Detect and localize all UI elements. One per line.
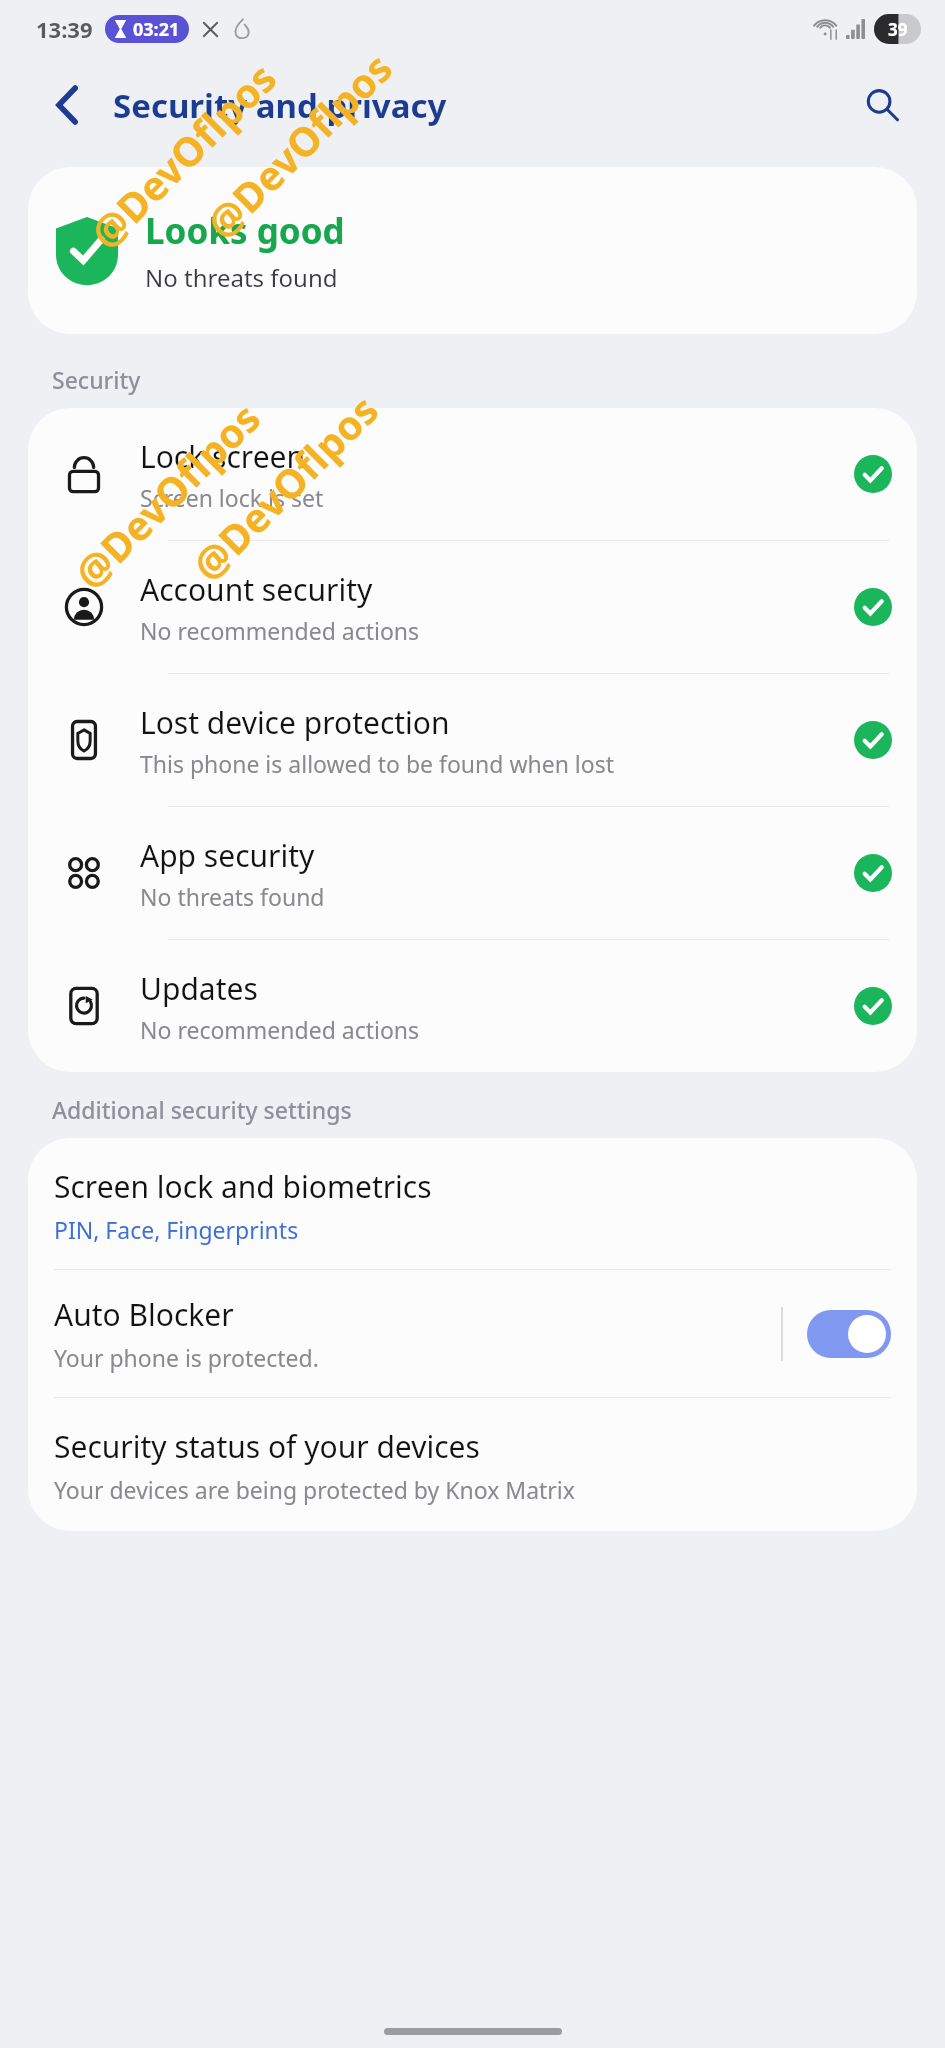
staticText: @DevOflpos <box>194 41 403 249</box>
staticText: Lock screen <box>140 436 306 477</box>
staticText: @DevOflpos <box>180 383 389 591</box>
staticText: Looks good <box>145 207 345 255</box>
staticText: App security <box>140 835 315 876</box>
staticText: No threats found <box>140 881 325 912</box>
staticText: PIN, Face, Fingerprints <box>54 1214 299 1245</box>
staticText: Screen lock is set <box>140 482 324 513</box>
button[interactable]: Lost device protection <box>28 674 917 806</box>
button[interactable]: Lock screen <box>28 408 917 540</box>
staticText: Updates <box>140 968 258 1009</box>
staticText: @DevOflpos <box>62 391 271 599</box>
staticText: Screen lock and biometrics <box>54 1166 432 1207</box>
staticText: Auto Blocker <box>54 1294 234 1335</box>
button[interactable]: Search <box>853 76 911 134</box>
button[interactable]: Updates <box>28 940 917 1072</box>
staticText: Your phone is protected. <box>54 1342 319 1373</box>
button[interactable]: Auto Blocker toggle <box>807 1310 891 1358</box>
staticText: 03:21 <box>133 17 180 42</box>
staticText: Security status of your devices <box>54 1426 480 1467</box>
button[interactable]: Back <box>40 77 96 133</box>
staticText: Security and privacy <box>113 83 447 128</box>
staticText: Account security <box>140 569 373 610</box>
staticText: Lost device protection <box>140 702 450 743</box>
staticText: No threats found <box>145 261 338 294</box>
button[interactable]: Account security <box>28 541 917 673</box>
staticText: Additional security settings <box>52 1094 352 1125</box>
button[interactable]: Screen lock and biometrics <box>28 1138 917 1269</box>
staticText: No recommended actions <box>140 615 420 646</box>
staticText: 39 <box>888 18 908 41</box>
button[interactable]: Looks good <box>28 167 917 334</box>
button[interactable]: Security status of your devices <box>28 1398 917 1531</box>
button[interactable]: App security <box>28 807 917 939</box>
staticText: Security <box>52 364 141 395</box>
staticText: Your devices are being protected by Knox… <box>54 1474 575 1505</box>
staticText: No recommended actions <box>140 1014 420 1045</box>
staticText: This phone is allowed to be found when l… <box>140 748 615 779</box>
staticText: @DevOflpos <box>78 51 287 259</box>
staticText: 13:39 <box>36 14 93 44</box>
button[interactable]: Auto Blocker <box>28 1270 917 1397</box>
